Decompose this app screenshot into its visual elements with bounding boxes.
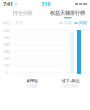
staticText: 线下+网点: [62, 78, 80, 83]
staticText: 单位：万元: [3, 20, 23, 25]
staticText: 0.00万: [27, 83, 38, 89]
staticText: 0: [5, 70, 7, 75]
staticText: APP端: [27, 78, 38, 83]
staticText: 同期: [79, 20, 87, 25]
staticText: 500: [3, 35, 9, 40]
staticText: 400: [3, 42, 9, 47]
staticText: 519: [41, 0, 50, 8]
staticText: 600: [3, 28, 9, 33]
staticText: 收益天梯排行榜: [50, 10, 85, 16]
staticText: 519.00万: [63, 83, 78, 89]
button[interactable]: 持仓分析: [0, 8, 45, 20]
button[interactable]: 收益天梯排行榜: [45, 8, 90, 20]
staticText: 100: [3, 63, 9, 68]
staticText: 持仓分析: [12, 10, 32, 16]
staticText: 本期: [64, 20, 72, 25]
staticText: 200: [3, 56, 9, 61]
staticText: 7:41: [3, 0, 13, 8]
staticText: 300: [3, 49, 9, 54]
